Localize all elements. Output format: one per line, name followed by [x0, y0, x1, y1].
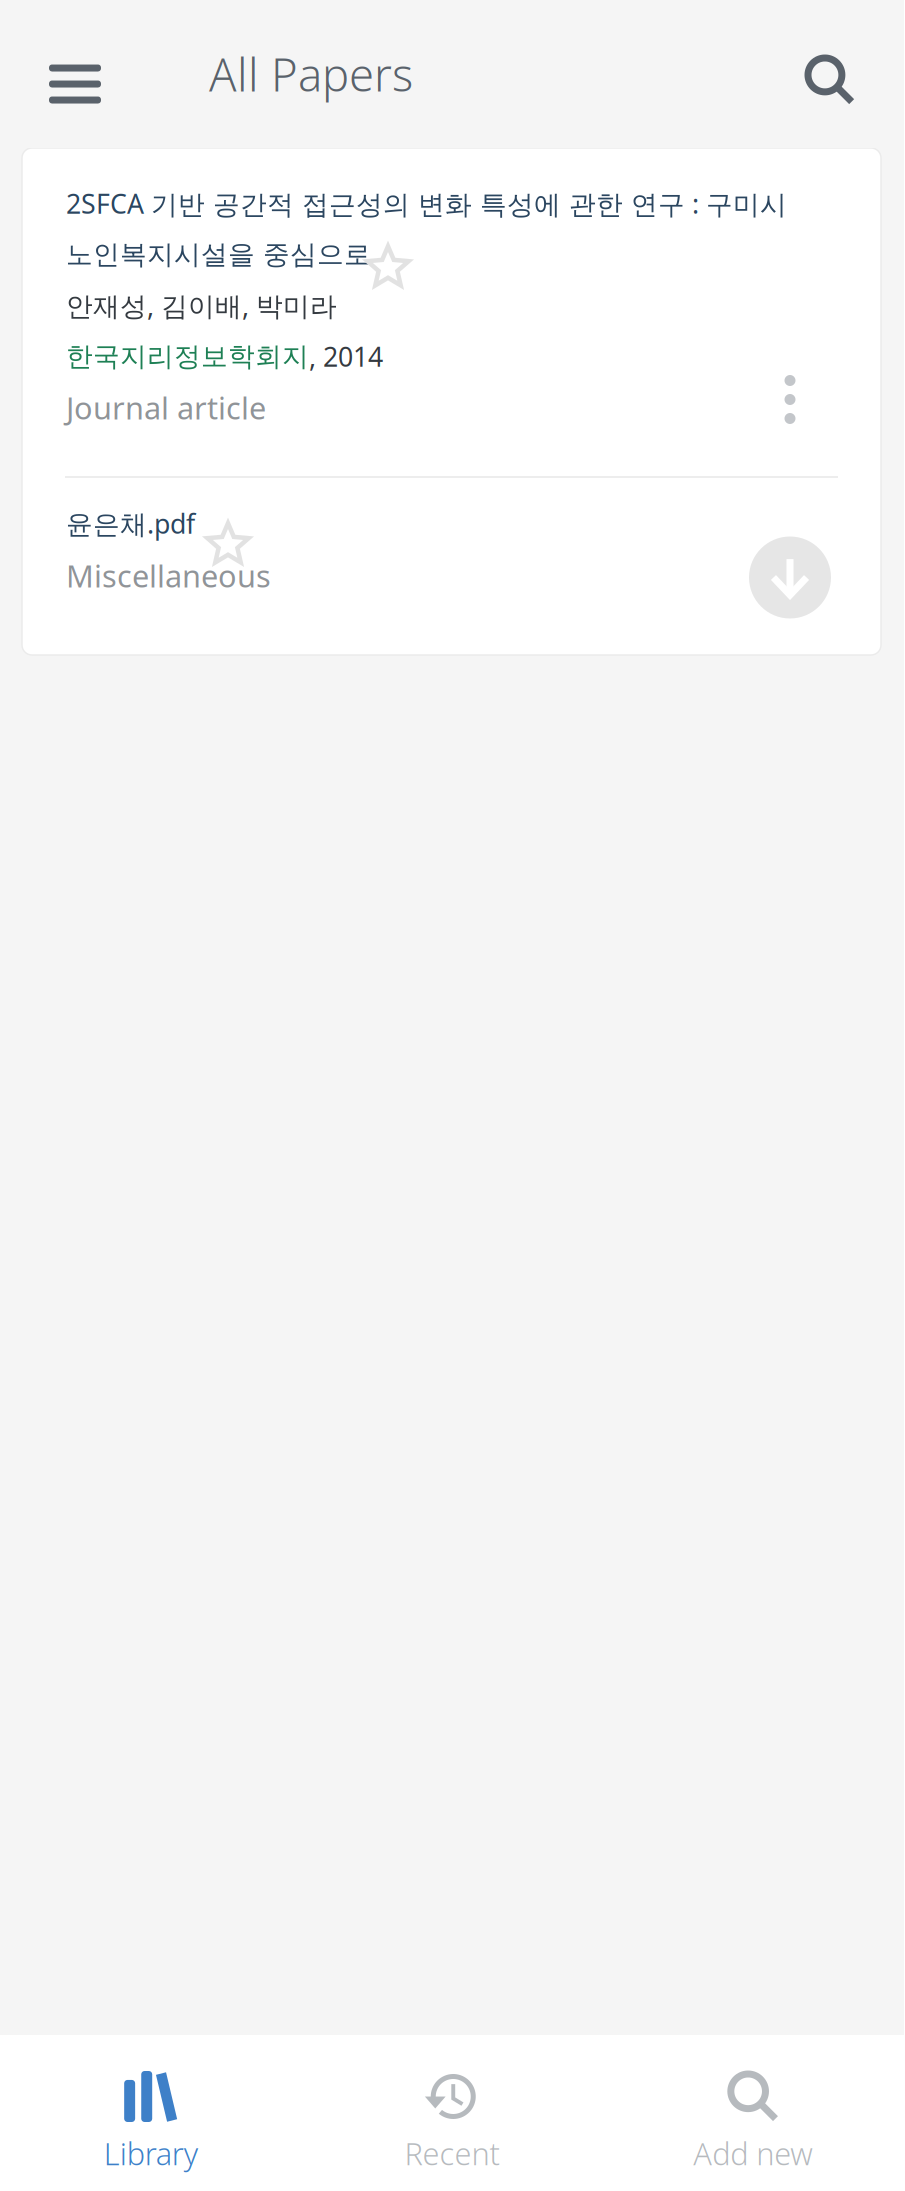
button[interactable]: Recent	[301, 2035, 603, 2191]
button[interactable]: Search	[780, 0, 880, 154]
staticText: 노인복지시설을 중심으로	[66, 238, 371, 271]
staticText: 윤은채.pdf	[66, 506, 195, 541]
staticText: Add new	[693, 2133, 813, 2174]
staticText: Miscellaneous	[66, 555, 271, 596]
staticText: 한국지리정보학회지	[66, 340, 309, 373]
staticText: 안재성, 김이배, 박미라	[66, 288, 337, 323]
button[interactable]: Add new	[603, 2035, 904, 2191]
button[interactable]: 2SFCA 기반 공간적 접근성의 변화 특성에 관한 연구 : 구미시	[22, 148, 881, 476]
button[interactable]: All Papers	[127, 0, 441, 148]
button[interactable]: Download	[738, 525, 842, 629]
staticText: All Papers	[209, 44, 413, 104]
button[interactable]: More options	[747, 349, 833, 449]
staticText: Recent	[404, 2133, 499, 2174]
staticText: Journal article	[66, 387, 266, 428]
button[interactable]: Library	[0, 2035, 301, 2191]
staticText: Library	[104, 2133, 198, 2174]
staticText: , 2014	[309, 339, 383, 374]
button[interactable]: 윤은채.pdf	[22, 478, 881, 655]
staticText: 2SFCA 기반 공간적 접근성의 변화 특성에 관한 연구 : 구미시	[66, 186, 787, 221]
button[interactable]: Menu	[23, 0, 127, 158]
